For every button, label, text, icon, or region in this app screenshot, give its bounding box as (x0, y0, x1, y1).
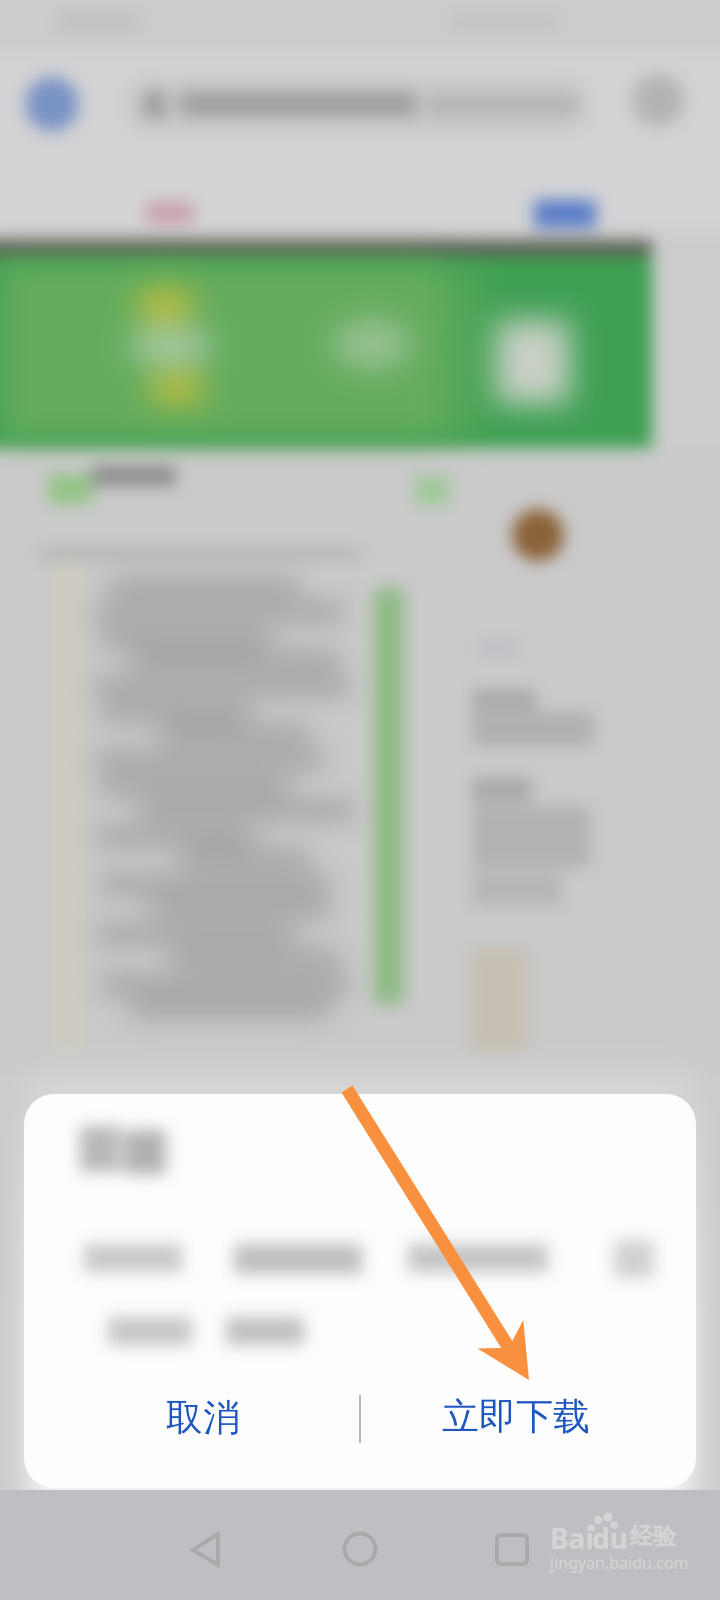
staticText: 立即下载 (442, 1393, 590, 1440)
staticText: Bai (550, 1519, 594, 1557)
staticText: 取消 (166, 1394, 240, 1441)
staticText: du (592, 1519, 628, 1557)
staticText: 经验 (630, 1522, 676, 1551)
button[interactable]: Back (178, 1516, 238, 1576)
button[interactable]: 取消 (24, 1368, 360, 1488)
button[interactable]: 立即下载 (360, 1368, 696, 1488)
staticText: jingyan.baidu.com (550, 1552, 689, 1574)
button[interactable]: Home (330, 1516, 390, 1576)
button[interactable]: Recent apps (482, 1516, 542, 1576)
